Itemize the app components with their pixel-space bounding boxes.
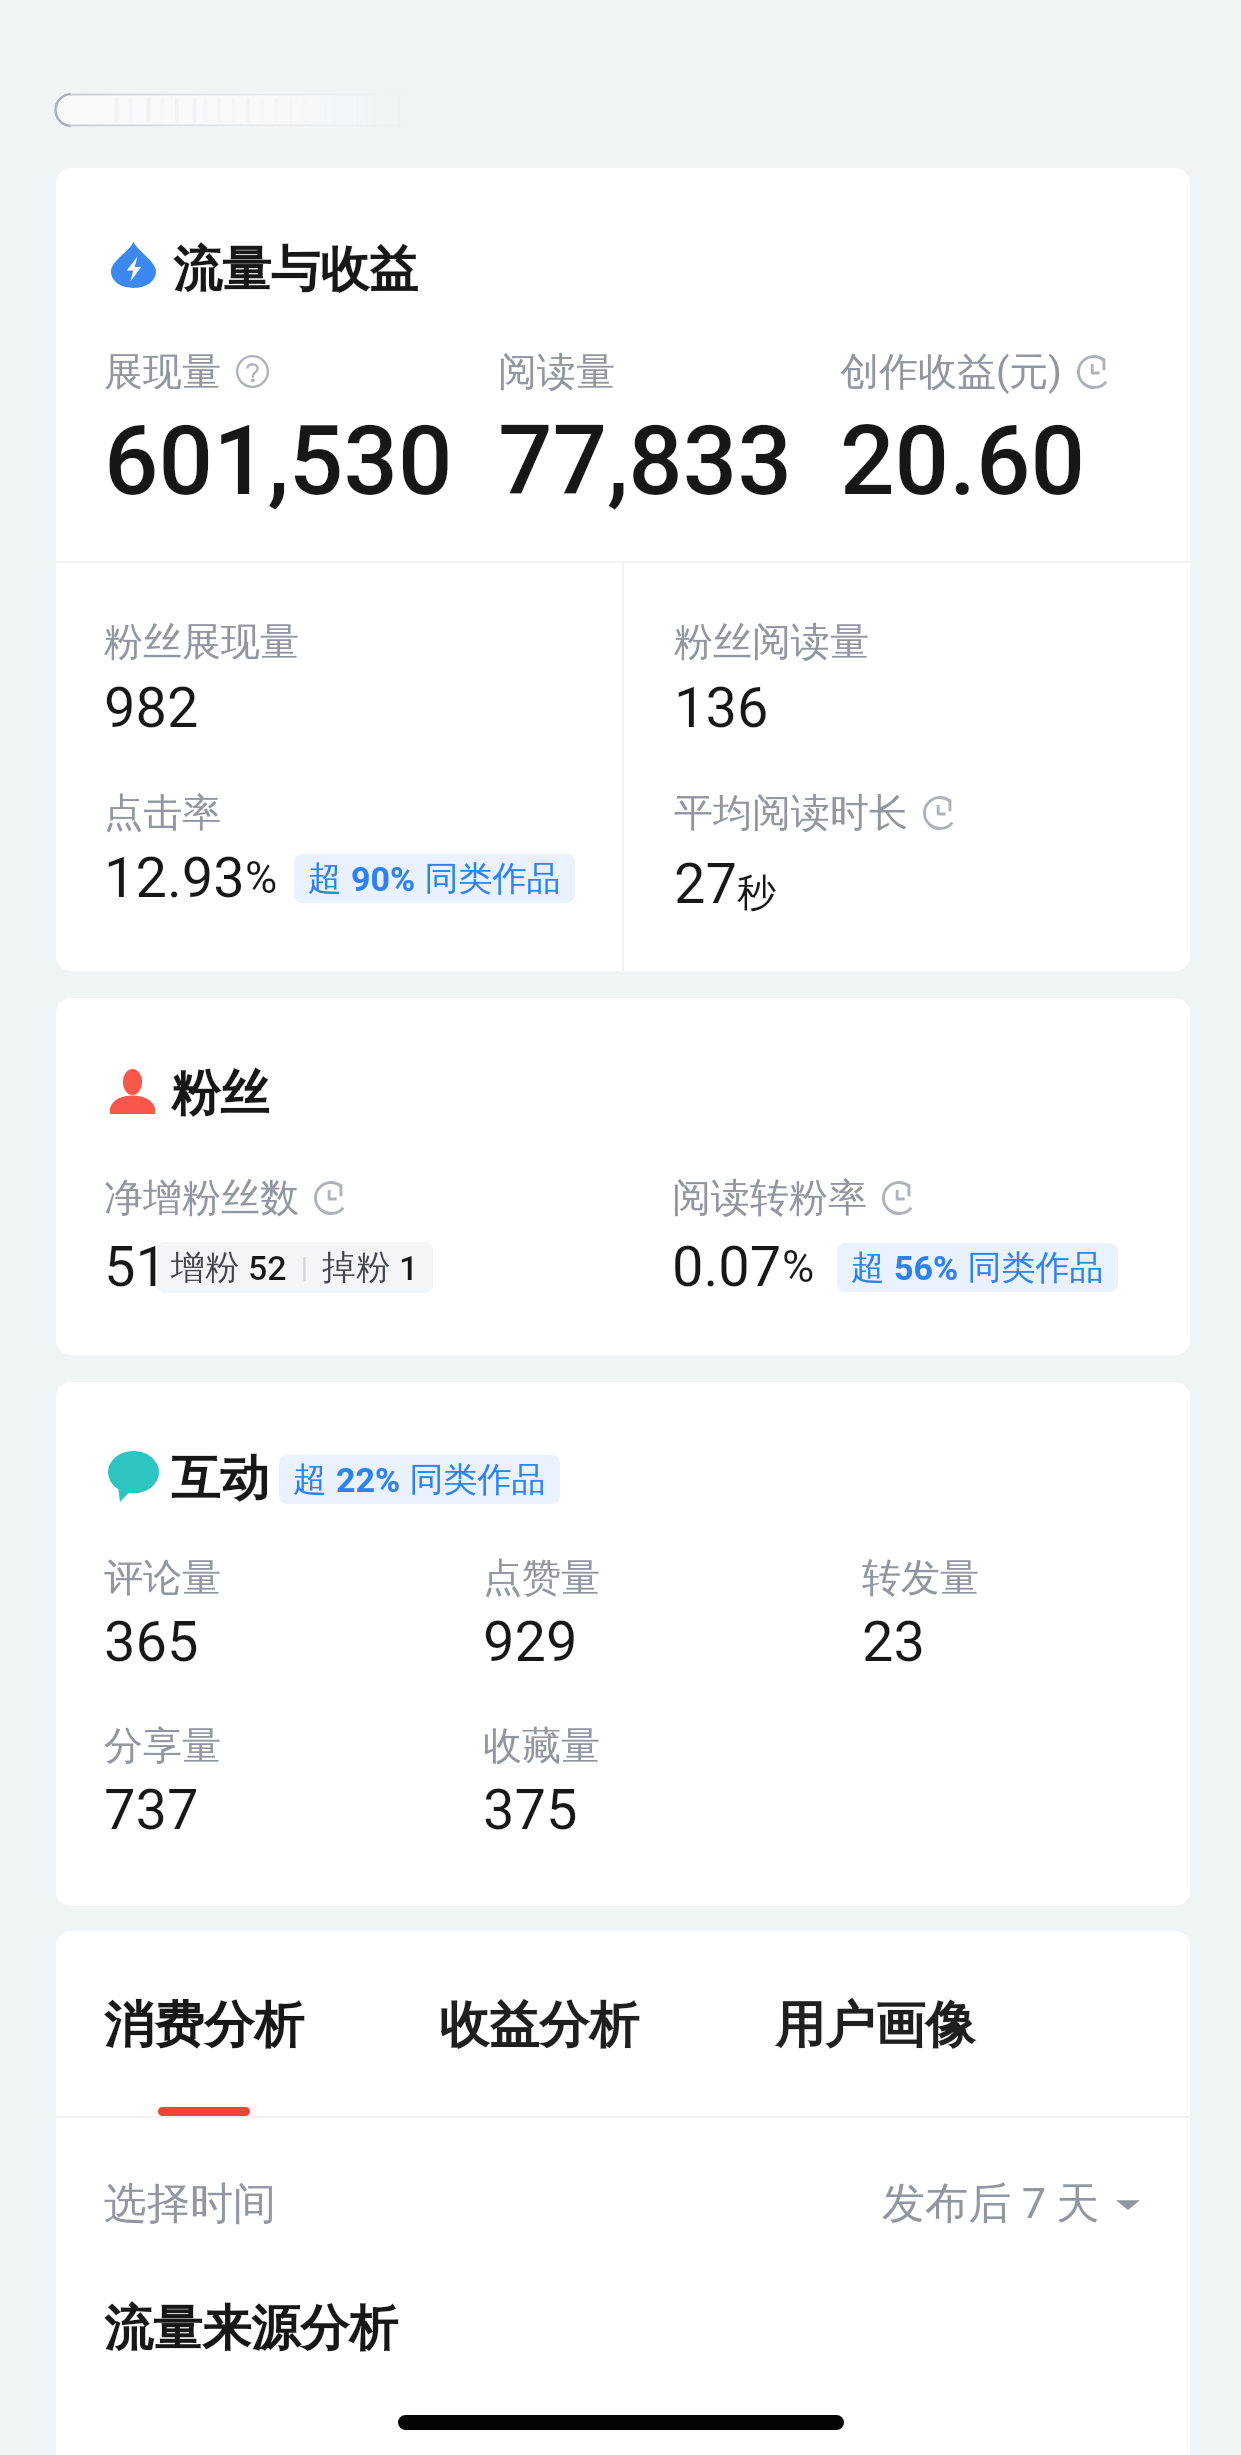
staticText: 同类作品 bbox=[959, 1246, 1104, 1289]
staticText: 粉丝展现量 bbox=[104, 617, 299, 666]
staticText: 流量与收益 bbox=[173, 239, 418, 301]
staticText: 601,530 bbox=[104, 405, 453, 518]
staticText: 27 bbox=[674, 851, 737, 917]
staticText: 选择时间 bbox=[104, 2177, 276, 2231]
button[interactable]: 发布后 7 天 bbox=[882, 2177, 1140, 2231]
staticText: | bbox=[287, 1251, 322, 1284]
staticText: 消费分析 bbox=[104, 1994, 304, 2057]
button[interactable]: 消费分析 bbox=[104, 1994, 304, 2116]
staticText: 转发量 bbox=[862, 1553, 979, 1602]
staticText: 同类作品 bbox=[401, 1458, 546, 1501]
staticText: 929 bbox=[483, 1609, 578, 1675]
staticText: 评论量 bbox=[104, 1553, 221, 1602]
button[interactable]: Metric help bbox=[236, 355, 269, 388]
staticText: 56% bbox=[894, 1248, 959, 1288]
staticText: 收益分析 bbox=[439, 1994, 639, 2057]
staticText: 12.93 bbox=[104, 845, 245, 911]
staticText: 52 bbox=[248, 1248, 287, 1288]
staticText: 增粉 bbox=[171, 1246, 248, 1289]
staticText: 77,833 bbox=[498, 405, 792, 518]
staticText: 51 bbox=[104, 1234, 167, 1300]
staticText: 秒 bbox=[737, 868, 776, 917]
staticText: 净增粉丝数 bbox=[104, 1173, 299, 1222]
staticText: 创作收益(元) bbox=[840, 347, 1062, 396]
staticText: 平均阅读时长 bbox=[674, 788, 908, 837]
staticText: 超 bbox=[293, 1458, 336, 1501]
staticText: 用户画像 bbox=[775, 1994, 975, 2057]
staticText: 365 bbox=[104, 1609, 199, 1675]
button[interactable]: Back bbox=[54, 90, 410, 130]
staticText: 阅读转粉率 bbox=[672, 1173, 867, 1222]
staticText: 展现量 bbox=[104, 347, 221, 396]
staticText: 阅读量 bbox=[498, 347, 615, 396]
staticText: 流量来源分析 bbox=[104, 2298, 398, 2360]
staticText: 粉丝 bbox=[171, 1063, 269, 1125]
staticText: 收藏量 bbox=[483, 1721, 600, 1770]
staticText: 0.07 bbox=[672, 1234, 782, 1300]
staticText: 1 bbox=[399, 1248, 419, 1288]
button[interactable]: Data delay info bbox=[314, 1181, 348, 1215]
staticText: 掉粉 bbox=[322, 1246, 399, 1289]
staticText: 23 bbox=[862, 1609, 925, 1675]
staticText: 20.60 bbox=[840, 405, 1086, 518]
staticText: 136 bbox=[674, 675, 769, 741]
button[interactable]: Data delay info bbox=[1077, 355, 1111, 389]
button[interactable]: Data delay info bbox=[882, 1181, 916, 1215]
staticText: 22% bbox=[336, 1460, 401, 1500]
button[interactable]: Data delay info bbox=[923, 796, 957, 830]
button[interactable]: 用户画像 bbox=[775, 1994, 975, 2116]
staticText: 发布后 7 天 bbox=[882, 2177, 1100, 2231]
staticText: % bbox=[782, 1241, 815, 1293]
staticText: 超 bbox=[851, 1246, 894, 1289]
staticText: 粉丝阅读量 bbox=[674, 617, 869, 666]
staticText: 375 bbox=[483, 1777, 578, 1843]
staticText: 点赞量 bbox=[483, 1553, 600, 1602]
staticText: 分享量 bbox=[104, 1721, 221, 1770]
staticText: 互动 bbox=[171, 1448, 269, 1510]
staticText: 737 bbox=[104, 1777, 199, 1843]
staticText: 90% bbox=[351, 859, 416, 899]
staticText: 超 bbox=[308, 857, 351, 900]
staticText: 同类作品 bbox=[416, 857, 561, 900]
staticText: 点击率 bbox=[104, 788, 221, 837]
staticText: 982 bbox=[104, 675, 199, 741]
button[interactable]: 收益分析 bbox=[439, 1994, 639, 2116]
staticText: % bbox=[245, 852, 278, 904]
